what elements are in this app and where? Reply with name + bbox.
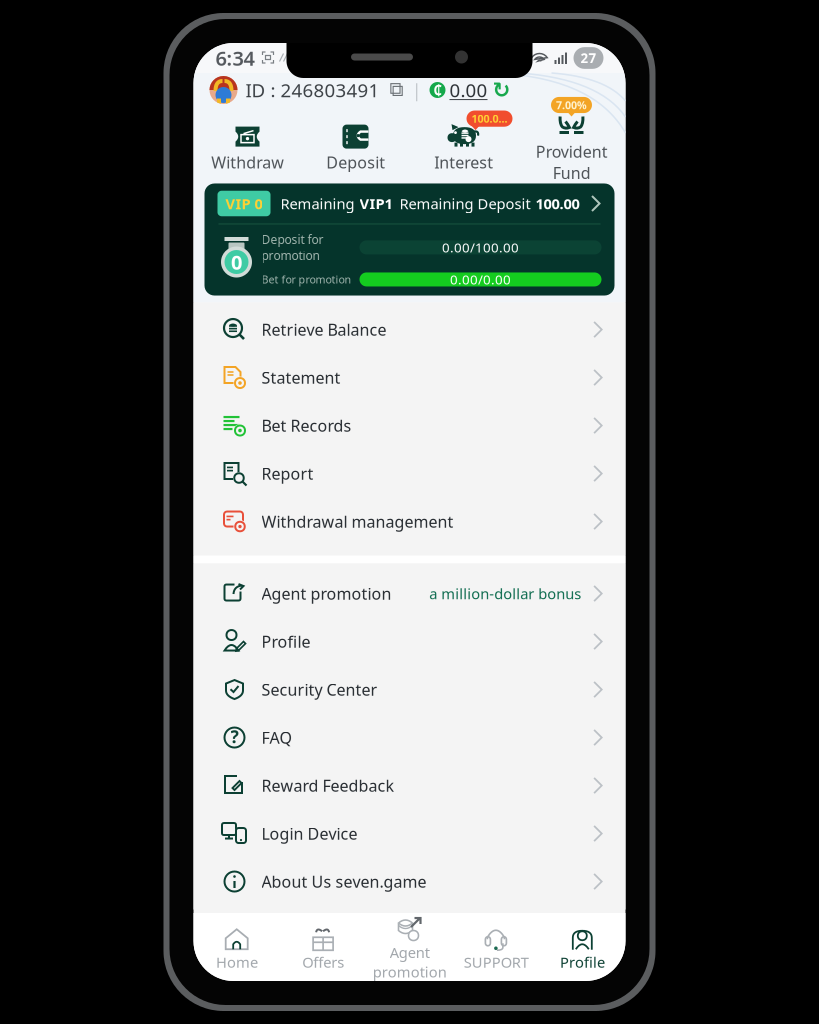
staticText: 7.00% (556, 98, 587, 112)
staticText: ID : 246803491 (245, 78, 379, 102)
staticText: Security Center (261, 679, 377, 700)
staticText: ₵ (433, 81, 441, 99)
staticText: Interest (434, 152, 493, 173)
button[interactable]: Agent promotion (193, 569, 625, 617)
staticText: Profile (261, 631, 310, 652)
staticText: SUPPORT (463, 952, 528, 972)
staticText: VIP1 (359, 194, 392, 213)
button[interactable]: Profile (539, 927, 625, 972)
staticText: Login Device (261, 823, 357, 844)
staticText: 6:34 (215, 45, 254, 71)
staticText: 0.00/100.00 (442, 239, 519, 256)
staticText: Home (216, 952, 258, 972)
staticText: ? (230, 725, 238, 748)
button[interactable]: Login Device (193, 809, 625, 857)
staticText: Withdrawal management (261, 511, 453, 532)
button[interactable]: SUPPORT (453, 927, 539, 972)
button[interactable]: Offers (280, 927, 366, 972)
button[interactable]: Reward Feedback (193, 761, 625, 809)
button[interactable]: Bet Records (193, 401, 625, 449)
staticText: FAQ (261, 727, 291, 748)
staticText: Bet for promotion (261, 272, 351, 287)
staticText: a million-dollar bonus (429, 584, 581, 603)
staticText: 100.00 (535, 194, 579, 213)
button[interactable]: ? (193, 713, 625, 761)
staticText: About Us seven.game (261, 871, 426, 892)
button[interactable]: Deposit (301, 118, 409, 173)
staticText: VIP 0 (225, 194, 262, 213)
button[interactable]: Withdraw (193, 118, 301, 173)
staticText: 0.00/0.00 (450, 271, 511, 288)
button[interactable]: Home (193, 927, 280, 972)
staticText: Remaining (280, 194, 354, 213)
button[interactable]: VIP 0 (193, 183, 625, 302)
button[interactable]: Report (193, 449, 625, 497)
staticText: Agent promotion (261, 583, 391, 604)
button[interactable]: Retrieve Balance (193, 305, 625, 353)
staticText: Reward Feedback (261, 775, 394, 796)
staticText: Profile (560, 952, 605, 972)
staticText: Withdraw (211, 152, 284, 173)
staticText: 100.0... (471, 111, 507, 126)
staticText: Bet Records (261, 415, 351, 436)
button[interactable]: Agent promotion (366, 917, 453, 981)
button[interactable]: Statement (193, 353, 625, 401)
staticText: Agent promotion (372, 942, 446, 981)
staticText: 27 (580, 49, 596, 67)
staticText: Deposit (326, 152, 385, 173)
button[interactable]: Withdrawal management (193, 497, 625, 545)
staticText: Statement (261, 367, 340, 388)
staticText: Report (261, 463, 313, 484)
staticText: ⧉ (389, 80, 403, 100)
staticText: Deposit for promotion (261, 231, 323, 263)
button[interactable]: Profile (193, 617, 625, 665)
staticText: ↻ (492, 78, 510, 102)
staticText: Remaining Deposit (399, 194, 530, 213)
button[interactable]: 7.00% (517, 107, 625, 183)
button[interactable]: About Us seven.game (193, 857, 625, 905)
button[interactable]: Security Center (193, 665, 625, 713)
staticText: 0.00 (449, 78, 487, 102)
staticText: Provident Fund (535, 141, 607, 183)
button[interactable]: 100.0... (409, 118, 517, 173)
staticText: 0 (231, 249, 242, 275)
staticText: Offers (302, 952, 344, 972)
staticText: | (411, 78, 421, 102)
staticText: Retrieve Balance (261, 319, 386, 340)
